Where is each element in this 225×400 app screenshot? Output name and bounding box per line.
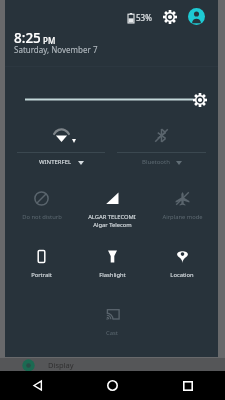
staticText: Portrait [31,271,52,279]
button[interactable]: Flashlight [77,241,147,279]
staticText: Do not disturb [22,213,62,221]
button[interactable]: Recent apps [150,371,225,400]
button[interactable]: Portrait [6,241,77,279]
button[interactable]: Cast [77,299,147,337]
button[interactable]: Display [0,358,225,372]
staticText: Saturday, November 7 [14,44,98,55]
button[interactable]: Home [75,371,150,400]
staticText: Flashlight [99,271,126,279]
button[interactable]: Brightness [5,84,218,105]
staticText: PM [43,35,56,46]
staticText: Airplane mode [162,213,203,221]
staticText: WINTERFEL [39,158,72,166]
button[interactable]: ALGAR TELECOMI [77,183,147,229]
button[interactable]: Settings [159,6,180,27]
button[interactable]: Bluetooth [117,119,206,166]
button[interactable]: WINTERFEL [17,119,105,166]
button[interactable]: Do not disturb [6,183,77,221]
button[interactable]: Back [0,371,75,400]
staticText: ALGAR TELECOMI [88,213,136,221]
staticText: Bluetooth [142,158,170,166]
button[interactable]: Airplane mode [147,183,217,221]
staticText: Display [48,360,74,370]
staticText: 53% [136,12,152,23]
staticText: Location [170,271,194,279]
staticText: Cast [106,329,118,337]
staticText: Algar Telecom [93,221,132,229]
button[interactable]: User profile [186,6,207,27]
button[interactable]: Location [147,241,217,279]
staticText: 8:25 [14,29,41,47]
